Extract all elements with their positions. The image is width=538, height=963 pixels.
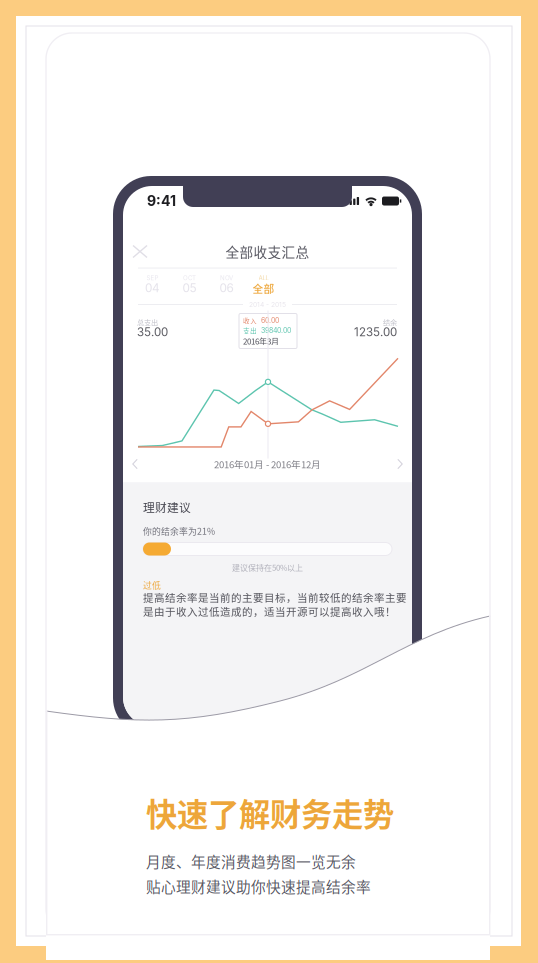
staticText: 9:41 [147, 192, 176, 209]
button[interactable]: Next period [388, 453, 412, 474]
staticText: 贴心理财建议助你快速提高结余率 [146, 876, 371, 897]
staticText: 快速了解财务走势 [146, 790, 394, 835]
staticText: OCT [183, 274, 196, 282]
staticText: 提高结余率是当前的主要目标，当前较低的结余率主要 [143, 589, 407, 605]
staticText: 04 [145, 281, 160, 295]
button[interactable]: NOV [208, 274, 245, 294]
staticText: 理财建议 [143, 498, 191, 515]
staticText: 过低 [143, 578, 161, 591]
staticText: 35.00 [137, 325, 168, 339]
staticText: 60.00 [261, 316, 279, 325]
staticText: 结余 [383, 317, 397, 327]
staticText: 2014 - 2015 [249, 300, 286, 309]
staticText: 1235.00 [354, 325, 397, 339]
staticText: 是由于收入过低造成的，适当开源可以提高收入哦！ [143, 603, 396, 619]
staticText: 你的结余率为21% [143, 524, 215, 537]
button[interactable]: OCT [171, 274, 208, 294]
staticText: ALL [258, 274, 268, 282]
staticText: 06 [219, 281, 233, 295]
staticText: 建议保持在50%以上 [232, 561, 303, 573]
staticText: 全部 [252, 280, 274, 296]
staticText: 05 [182, 281, 196, 295]
button[interactable]: ALL [245, 274, 282, 294]
button[interactable]: Previous period [123, 453, 147, 474]
button[interactable]: Close [123, 238, 157, 264]
staticText: 支出 [243, 326, 257, 335]
button[interactable]: SEP [134, 274, 171, 294]
staticText: 全部收支汇总 [225, 242, 309, 261]
staticText: 2016年3月 [243, 335, 279, 347]
staticText: 2016年01月 - 2016年12月 [214, 457, 321, 471]
staticText: 总支出 [137, 317, 158, 327]
staticText: 39840.00 [261, 326, 291, 335]
staticText: NOV [220, 274, 233, 282]
staticText: 月度、年度消费趋势图一览无余 [146, 850, 356, 872]
staticText: 收入 [243, 316, 257, 325]
staticText: SEP [146, 274, 158, 282]
